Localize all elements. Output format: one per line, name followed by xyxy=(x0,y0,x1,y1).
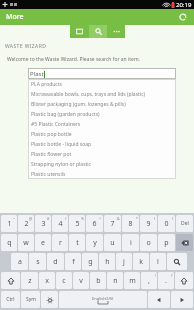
button[interactable]: c xyxy=(56,272,72,289)
button[interactable]: 2 xyxy=(18,215,34,232)
staticText: 2 xyxy=(24,219,29,229)
button[interactable]: 1 xyxy=(1,215,17,232)
button[interactable]: g xyxy=(82,253,98,270)
staticText: ) xyxy=(172,216,174,221)
button[interactable]: 7 xyxy=(104,215,121,232)
staticText: 1 xyxy=(7,219,12,229)
button[interactable]: Plastic bag (garden products) xyxy=(28,109,176,119)
button[interactable]: 5 xyxy=(69,215,85,232)
button[interactable]: b xyxy=(90,272,106,289)
staticText: Plastic bottle - liquid soap xyxy=(31,141,92,148)
staticText: Plastic utensils xyxy=(31,171,66,178)
staticText: 6 xyxy=(92,219,97,229)
staticText: , xyxy=(148,276,150,286)
staticText: & xyxy=(117,216,120,221)
button[interactable]: Move cursor right xyxy=(171,291,193,308)
button[interactable]: 6 xyxy=(86,215,103,232)
button[interactable]: w xyxy=(18,234,34,251)
button[interactable]: e xyxy=(35,234,51,251)
staticText: s xyxy=(36,257,40,267)
button[interactable]: y xyxy=(86,234,103,251)
button[interactable]: t xyxy=(69,234,85,251)
button[interactable]: #5 Plastic Containers xyxy=(28,119,176,129)
button[interactable]: Del xyxy=(176,215,193,232)
button[interactable]: Move cursor left xyxy=(148,291,170,308)
staticText: * xyxy=(136,216,138,221)
button[interactable]: Blister packaging (gum, lozenges & pills… xyxy=(28,99,176,109)
button[interactable]: Plastic flower pot xyxy=(28,149,176,159)
button[interactable]: d xyxy=(47,253,64,270)
staticText: a xyxy=(18,257,22,267)
button[interactable]: Voice input xyxy=(41,291,58,308)
button[interactable]: Plastic bottle - liquid soap xyxy=(28,139,176,149)
staticText: l xyxy=(157,257,159,267)
staticText: % xyxy=(81,216,84,221)
staticText: q xyxy=(7,238,12,248)
staticText: r xyxy=(59,238,62,248)
staticText: i xyxy=(130,238,132,248)
button[interactable]: a xyxy=(11,253,28,270)
staticText: WASTE WIZARD xyxy=(5,43,47,50)
button[interactable]: z xyxy=(21,272,38,289)
button[interactable]: 0 xyxy=(158,215,175,232)
button[interactable]: Waste Wizard search xyxy=(89,25,107,38)
staticText: p xyxy=(164,238,169,248)
staticText: Plastic flower pot xyxy=(31,151,72,158)
button[interactable]: h xyxy=(99,253,115,270)
button[interactable]: p xyxy=(158,234,175,251)
button[interactable]: . xyxy=(158,272,174,289)
button[interactable]: 9 xyxy=(140,215,157,232)
button[interactable]: Microwavable bowls, cups, trays and lids… xyxy=(28,89,176,99)
staticText: e xyxy=(41,238,45,248)
button[interactable]: 4 xyxy=(52,215,68,232)
button[interactable]: Sym xyxy=(21,291,40,308)
button[interactable]: Space xyxy=(59,291,147,308)
staticText: 8 xyxy=(128,219,133,229)
button[interactable]: PLA products xyxy=(28,79,176,89)
staticText: j xyxy=(123,257,125,267)
staticText: 7 xyxy=(110,219,115,229)
button[interactable]: i xyxy=(122,234,139,251)
staticText: x xyxy=(45,276,49,286)
button[interactable]: o xyxy=(140,234,157,251)
button[interactable]: Plast xyxy=(28,68,176,79)
button[interactable]: Shift xyxy=(175,272,193,289)
button[interactable]: v xyxy=(73,272,89,289)
button[interactable]: s xyxy=(29,253,46,270)
button[interactable]: k xyxy=(133,253,149,270)
staticText: b xyxy=(96,276,101,286)
button[interactable]: f xyxy=(65,253,81,270)
button[interactable]: j xyxy=(116,253,132,270)
button[interactable]: x xyxy=(39,272,55,289)
staticText: ~ xyxy=(13,216,16,221)
button[interactable]: Collection calendar xyxy=(70,25,89,38)
staticText: / xyxy=(65,216,67,221)
staticText: Blister packaging (gum, lozenges & pills… xyxy=(31,101,126,108)
button[interactable]: Plastic pop bottle xyxy=(28,129,176,139)
button[interactable]: l xyxy=(150,253,166,270)
staticText: k xyxy=(139,257,143,267)
button[interactable]: Shift xyxy=(1,272,20,289)
staticText: m xyxy=(129,276,136,286)
staticText: c xyxy=(62,276,66,286)
button[interactable]: Search xyxy=(167,253,187,270)
button[interactable]: m xyxy=(124,272,140,289)
button[interactable]: u xyxy=(104,234,121,251)
staticText: ! xyxy=(155,273,156,278)
button[interactable]: r xyxy=(52,234,68,251)
button[interactable]: n xyxy=(107,272,123,289)
button[interactable]: 3 xyxy=(35,215,51,232)
button[interactable]: q xyxy=(1,234,17,251)
button[interactable]: More options xyxy=(107,25,125,38)
button[interactable]: Refresh xyxy=(177,11,189,23)
button[interactable]: Backspace xyxy=(176,234,193,251)
button[interactable]: Strapping nylon or plastic xyxy=(28,159,176,169)
button[interactable]: , xyxy=(141,272,157,289)
button[interactable]: Ctrl xyxy=(1,291,20,308)
button[interactable]: 8 xyxy=(122,215,139,232)
staticText: 3 xyxy=(41,219,46,229)
staticText: 4 xyxy=(58,219,63,229)
button[interactable]: Plastic utensils xyxy=(28,169,176,179)
staticText: h xyxy=(105,257,110,267)
staticText: ( xyxy=(154,216,156,221)
